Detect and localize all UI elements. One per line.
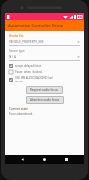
staticText: Automotive Controller Demo [8,23,64,28]
button[interactable]: VEHICLE_PROPERTY_XXX [9,39,80,46]
button[interactable]: Request audio focus [26,86,63,94]
staticText: Pause when ducked. [15,70,43,74]
staticText: VEHICLE_PROPERTY_XXX [9,40,77,44]
staticText: Abandon audio focus [30,98,60,102]
staticText: accept delayed focus [15,64,42,68]
staticText: N / A [9,55,77,59]
staticText: Request audio focus [30,88,59,92]
staticText: BUS 00 [15,80,23,83]
staticText: Focus abandoned. [9,112,34,116]
button[interactable]: accept delayed focus [9,64,80,68]
staticText: Vendor Ext. [9,34,25,38]
button[interactable]: Pause when ducked. [9,70,80,74]
staticText: Sensor type [9,49,25,53]
button[interactable]: Abandon audio focus [26,96,64,104]
button[interactable]: N / A [9,54,80,61]
button[interactable]: Recent apps [62,155,71,164]
staticText: USE HW AUDIO BACKEND (on) [15,76,54,80]
button[interactable]: Automotive Controller Demo [5,20,84,31]
button[interactable]: Back [18,155,27,164]
button[interactable]: USE HW AUDIO BACKEND (on) [9,76,80,83]
button[interactable]: Home [40,155,49,164]
staticText: Current state [9,107,28,111]
